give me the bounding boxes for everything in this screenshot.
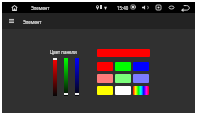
button[interactable]: Color channel slider xyxy=(72,54,81,100)
button[interactable]: Screenshot xyxy=(153,2,164,13)
button[interactable]: Color channel slider xyxy=(50,54,59,100)
button[interactable]: Back xyxy=(179,2,192,13)
staticText: 15:40 xyxy=(117,5,129,11)
button[interactable]: Red xyxy=(97,62,113,71)
button[interactable]: Blue xyxy=(133,62,149,71)
button[interactable]: Yellow xyxy=(97,86,113,95)
staticText: Цвет панели xyxy=(50,49,77,55)
button[interactable]: Light blue xyxy=(133,74,149,83)
staticText: Элемент xyxy=(31,5,50,11)
button[interactable]: Custom colour xyxy=(133,86,149,95)
button[interactable]: Menu xyxy=(4,13,18,29)
button[interactable]: Green xyxy=(115,62,131,71)
button[interactable]: Recent apps xyxy=(166,2,177,13)
button[interactable]: Home xyxy=(7,2,22,13)
button[interactable]: Selected colour preview xyxy=(97,49,150,57)
button[interactable]: Light green xyxy=(115,74,131,83)
staticText: Элемент xyxy=(23,19,42,25)
button[interactable]: Volume xyxy=(139,2,150,13)
button[interactable]: Color channel slider xyxy=(61,54,70,100)
button[interactable]: White xyxy=(115,86,131,95)
button[interactable]: Light red xyxy=(97,74,113,83)
